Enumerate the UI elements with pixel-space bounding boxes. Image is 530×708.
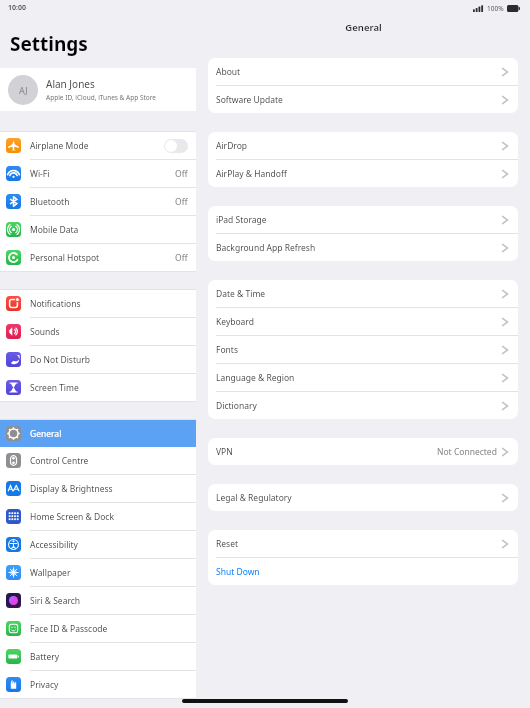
staticText: Language & Region — [216, 372, 295, 384]
staticText: General — [30, 428, 62, 440]
staticText: Date & Time — [216, 288, 266, 300]
staticText: Battery — [30, 651, 60, 663]
staticText: VPN — [216, 446, 233, 458]
staticText: Software Update — [216, 94, 283, 106]
button[interactable]: Keyboard — [208, 308, 518, 335]
button[interactable]: Wi-Fi — [0, 160, 196, 187]
staticText: Fonts — [216, 344, 238, 356]
staticText: Wallpaper — [30, 567, 71, 579]
staticText: Airplane Mode — [30, 140, 89, 152]
button[interactable]: Shut Down — [208, 558, 518, 585]
button[interactable]: iPad Storage — [208, 206, 518, 233]
button[interactable]: Language & Region — [208, 364, 518, 391]
button[interactable]: Wallpaper — [0, 559, 196, 586]
staticText: Do Not Disturb — [30, 354, 90, 366]
staticText: Settings — [10, 31, 88, 57]
button[interactable]: Personal Hotspot — [0, 244, 196, 271]
staticText: Wi-Fi — [30, 168, 50, 180]
staticText: Off — [175, 252, 188, 264]
button[interactable]: About — [208, 58, 518, 85]
staticText: Alan Jones — [46, 77, 95, 91]
button[interactable]: Control Centre — [0, 447, 196, 474]
button[interactable]: Privacy — [0, 671, 196, 698]
staticText: General — [345, 21, 382, 34]
button[interactable]: AirDrop — [208, 132, 518, 159]
button[interactable]: Battery — [0, 643, 196, 670]
staticText: Accessibility — [30, 539, 78, 551]
button[interactable]: Do Not Disturb — [0, 346, 196, 373]
staticText: Privacy — [30, 679, 59, 691]
button[interactable]: Dictionary — [208, 392, 518, 419]
button[interactable]: Screen Time — [0, 374, 196, 401]
button[interactable]: Airplane Mode — [0, 132, 196, 159]
staticText: Reset — [216, 538, 239, 550]
staticText: Sounds — [30, 326, 60, 338]
button[interactable]: Reset — [208, 530, 518, 557]
staticText: Off — [175, 168, 188, 180]
staticText: Display & Brightness — [30, 483, 113, 495]
staticText: Mobile Data — [30, 224, 79, 236]
button[interactable]: Accessibility — [0, 531, 196, 558]
button[interactable]: Face ID & Passcode — [0, 615, 196, 642]
staticText: AirPlay & Handoff — [216, 168, 287, 180]
staticText: AJ — [19, 84, 28, 96]
staticText: Shut Down — [216, 566, 260, 578]
staticText: About — [216, 66, 241, 78]
staticText: Background App Refresh — [216, 242, 316, 254]
button[interactable]: VPN — [208, 438, 518, 465]
staticText: AirDrop — [216, 140, 248, 152]
staticText: Personal Hotspot — [30, 252, 100, 264]
staticText: Siri & Search — [30, 595, 81, 607]
staticText: Screen Time — [30, 382, 79, 394]
button[interactable]: General — [0, 420, 196, 447]
button[interactable]: Sounds — [0, 318, 196, 345]
button[interactable]: Mobile Data — [0, 216, 196, 243]
staticText: 10:00 — [8, 3, 26, 13]
button[interactable]: Home Screen & Dock — [0, 503, 196, 530]
staticText: Keyboard — [216, 316, 254, 328]
button[interactable]: Display & Brightness — [0, 475, 196, 502]
button[interactable]: Airplane Mode toggle — [164, 139, 188, 153]
staticText: Home Screen & Dock — [30, 511, 114, 523]
staticText: Apple ID, iCloud, iTunes & App Store — [46, 93, 156, 102]
staticText: Legal & Regulatory — [216, 492, 292, 504]
staticText: Control Centre — [30, 455, 89, 467]
button[interactable]: Bluetooth — [0, 188, 196, 215]
staticText: iPad Storage — [216, 214, 267, 226]
button[interactable]: Background App Refresh — [208, 234, 518, 261]
button[interactable]: Legal & Regulatory — [208, 484, 518, 511]
staticText: Bluetooth — [30, 196, 70, 208]
button[interactable]: Software Update — [208, 86, 518, 113]
button[interactable]: Siri & Search — [0, 587, 196, 614]
staticText: Off — [175, 196, 188, 208]
staticText: Dictionary — [216, 400, 257, 412]
button[interactable]: Fonts — [208, 336, 518, 363]
button[interactable]: AJ — [0, 68, 196, 111]
staticText: Face ID & Passcode — [30, 623, 108, 635]
button[interactable]: AirPlay & Handoff — [208, 160, 518, 187]
button[interactable]: Notifications — [0, 290, 196, 317]
staticText: Not Connected — [437, 446, 497, 458]
staticText: 100% — [487, 4, 504, 13]
staticText: Notifications — [30, 298, 81, 310]
button[interactable]: Date & Time — [208, 280, 518, 307]
